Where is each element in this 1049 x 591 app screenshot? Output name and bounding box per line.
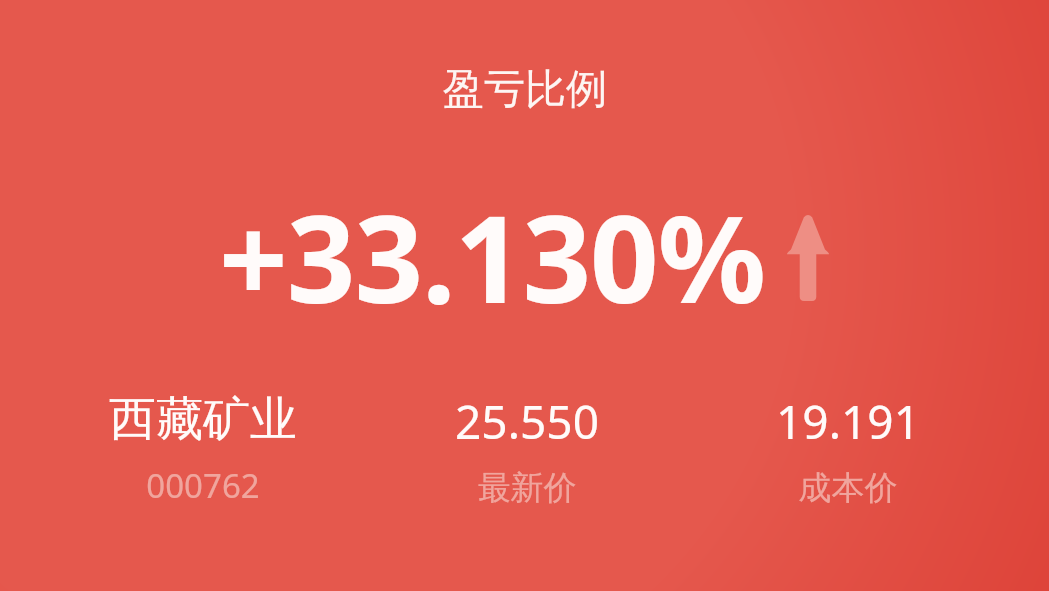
staticText: 最新价 [357,467,697,509]
staticText: 成本价 [678,467,1018,509]
button[interactable]: 西藏矿业 000762 [33,390,373,508]
other: Gain, trending up [785,213,831,301]
staticText: 西藏矿业 [33,390,373,449]
button[interactable]: 盈亏比例 [433,62,617,118]
button[interactable]: 成本价 19.191 [678,390,1018,509]
staticText: 25.550 [357,390,697,453]
button[interactable]: 最新价 25.550 [357,390,697,509]
staticText: 盈亏比例 [443,64,607,116]
button[interactable]: +33.130% [0,175,1049,338]
staticText: +33.130% [219,175,765,338]
staticText: 19.191 [678,390,1018,453]
staticText: 000762 [33,463,373,508]
